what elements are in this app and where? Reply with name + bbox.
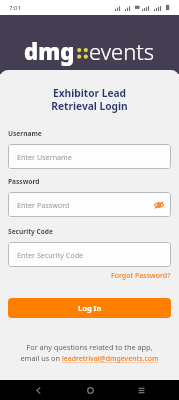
staticText: Log In	[78, 303, 102, 313]
button[interactable]: Back	[24, 380, 52, 400]
button[interactable]: Enter Security Code	[8, 242, 171, 267]
staticText: Enter Password	[17, 200, 70, 210]
button[interactable]: Forgot Password?	[111, 271, 171, 281]
button[interactable]: Home	[76, 380, 104, 400]
staticText: Enter Security Code	[17, 250, 84, 260]
staticText: Security Code	[8, 227, 53, 236]
button[interactable]: Show password	[152, 198, 165, 211]
staticText: events	[89, 36, 155, 66]
staticText: Password	[8, 177, 40, 186]
button[interactable]: For any questions related to the app, em…	[8, 342, 171, 364]
button[interactable]: Log In	[8, 298, 171, 318]
staticText: dmg	[24, 36, 75, 66]
staticText: Username	[8, 129, 42, 138]
button[interactable]: Enter Username	[8, 144, 171, 169]
button[interactable]: Enter Password	[8, 192, 171, 217]
staticText: Enter Username	[17, 152, 72, 162]
staticText: Exhibitor Lead Retrieval Login	[8, 86, 171, 113]
staticText: 7:01	[9, 4, 21, 12]
button[interactable]: Recent apps	[127, 380, 155, 400]
